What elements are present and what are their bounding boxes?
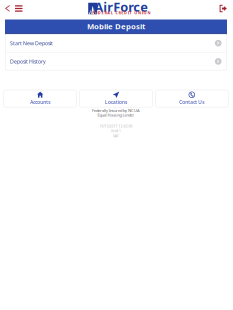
staticText: Equal Housing Lender [97,112,134,118]
staticText: AirForce [94,0,148,15]
staticText: UAT [113,134,119,138]
button[interactable]: Locations [79,90,153,107]
button[interactable]: Log out [217,1,232,16]
button[interactable]: Start New Deposit [5,34,227,52]
staticText: Deposit History [10,58,46,65]
staticText: Start New Deposit [10,40,53,47]
button[interactable]: Contact Us [155,90,228,107]
staticText: FEDERAL CREDIT UNION [92,10,150,15]
staticText: Mobile Deposit [87,21,145,31]
button[interactable]: Deposit History [5,53,227,70]
staticText: Ver# 1 [111,129,121,133]
staticText: Accounts [30,99,50,105]
button[interactable]: Menu [12,1,25,16]
staticText: 10/13/2017 13:43:08 [99,124,132,128]
staticText: Contact Us [179,99,204,105]
button[interactable]: Back [0,1,12,16]
staticText: Locations [105,99,127,105]
staticText: Federally Insured by NCUA [92,108,140,113]
button[interactable]: Accounts [3,90,77,107]
